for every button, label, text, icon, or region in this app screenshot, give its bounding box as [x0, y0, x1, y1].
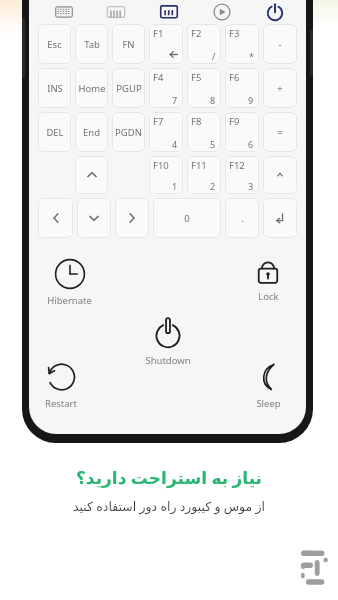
staticText: 5 — [210, 138, 216, 150]
button[interactable]: F8 — [187, 112, 221, 152]
staticText: F4 — [153, 71, 164, 84]
staticText: نیاز به استراحت دارید؟ — [76, 466, 262, 489]
button[interactable]: F4 — [149, 68, 183, 108]
staticText: F10 — [153, 159, 169, 172]
button[interactable]: Tab — [75, 24, 108, 64]
button[interactable]: F11 — [187, 156, 221, 194]
staticText: PGUP — [116, 82, 142, 95]
staticText: F2 — [191, 27, 202, 40]
staticText: F1 — [153, 27, 164, 40]
staticText: Lock — [258, 290, 279, 303]
staticText: 2 — [210, 180, 216, 192]
button[interactable]: - — [263, 24, 297, 64]
button[interactable]: F12 — [225, 156, 259, 194]
button[interactable]: PGUP — [112, 68, 145, 108]
button[interactable]: FN — [112, 24, 145, 64]
button[interactable]: 0 — [153, 198, 221, 238]
staticText: FN — [122, 38, 135, 51]
button[interactable]: Media play — [211, 1, 233, 23]
staticText: F12 — [229, 159, 245, 172]
button[interactable]: F1 — [149, 24, 183, 64]
button[interactable]: Esc — [38, 24, 71, 64]
button[interactable]: down — [77, 198, 111, 238]
staticText: 9 — [248, 94, 254, 106]
staticText: End — [83, 126, 100, 139]
button[interactable]: F9 — [225, 112, 259, 152]
button[interactable]: Restart — [43, 359, 79, 412]
button[interactable]: F5 — [187, 68, 221, 108]
staticText: Hibernate — [47, 294, 92, 307]
button[interactable]: right — [115, 198, 149, 238]
staticText: PGDN — [115, 126, 142, 139]
staticText: Shutdown — [145, 354, 191, 367]
button[interactable]: F6 — [225, 68, 259, 108]
staticText: Restart — [45, 397, 77, 410]
staticText: 7 — [172, 94, 178, 106]
staticText: * — [249, 50, 254, 62]
staticText: از موس و کیبورد راه دور استفاده کنید — [73, 498, 265, 515]
button[interactable]: Ctrl key — [105, 1, 127, 23]
staticText: F11 — [191, 159, 207, 172]
staticText: 4 — [172, 138, 178, 150]
staticText: 3 — [248, 180, 254, 192]
button[interactable]: PGDN — [112, 112, 145, 152]
button[interactable]: End — [75, 112, 108, 152]
staticText: F6 — [229, 71, 240, 84]
staticText: 0 — [184, 212, 190, 225]
button[interactable]: Power — [264, 1, 286, 23]
staticText: F5 — [191, 71, 202, 84]
staticText: - — [278, 38, 282, 51]
button[interactable]: left — [38, 198, 73, 238]
button[interactable]: F7 — [149, 112, 183, 152]
staticText: 6 — [248, 138, 254, 150]
button[interactable]: Fn key — [158, 1, 180, 23]
staticText: Tab — [84, 38, 100, 51]
staticText: F9 — [229, 115, 240, 128]
staticText: . — [241, 212, 244, 225]
button[interactable]: DEL — [38, 112, 71, 152]
button[interactable]: Shutdown — [143, 314, 193, 369]
staticText: / — [212, 50, 216, 62]
button[interactable]: Home — [75, 68, 108, 108]
button[interactable]: Keyboard — [53, 1, 75, 23]
button[interactable]: . — [225, 198, 259, 238]
button[interactable]: F10 — [149, 156, 183, 194]
button[interactable]: F2 — [187, 24, 221, 64]
staticText: = — [277, 126, 283, 139]
staticText: F8 — [191, 115, 202, 128]
staticText: Esc — [47, 38, 62, 51]
staticText: INS — [47, 82, 63, 95]
button[interactable]: up — [75, 156, 108, 194]
button[interactable]: + — [263, 68, 297, 108]
staticText: F3 — [229, 27, 240, 40]
button[interactable]: enter — [263, 198, 297, 238]
button[interactable]: = — [263, 112, 297, 152]
button[interactable]: Hibernate — [45, 256, 94, 309]
staticText: 8 — [210, 94, 216, 106]
button[interactable]: INS — [38, 68, 71, 108]
staticText: DEL — [46, 126, 64, 139]
button[interactable]: Lock — [250, 252, 286, 305]
staticText: F7 — [153, 115, 164, 128]
button[interactable]: Sleep — [250, 359, 286, 412]
staticText: Sleep — [256, 397, 281, 410]
staticText: Home — [78, 82, 106, 95]
button[interactable]: caret — [263, 156, 297, 194]
button[interactable]: F3 — [225, 24, 259, 64]
staticText: 1 — [172, 180, 178, 192]
staticText: + — [277, 82, 283, 95]
